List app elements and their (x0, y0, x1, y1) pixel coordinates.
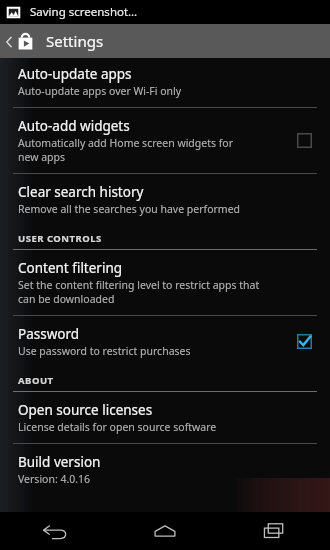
staticText: Saving screenshot… (30, 4, 138, 20)
button[interactable]: Build version (0, 444, 330, 495)
button[interactable]: Unchecked (293, 129, 316, 152)
staticText: Settings (46, 31, 104, 51)
staticText: Password (18, 325, 80, 343)
staticText: Auto-add widgets (18, 117, 130, 135)
staticText: Content filtering (18, 259, 123, 277)
staticText: Set the content filtering level to restr… (18, 278, 260, 306)
staticText: Use password to restrict purchases (18, 344, 191, 358)
button[interactable]: Auto-add widgets (0, 108, 330, 173)
button[interactable]: Content filtering (0, 250, 330, 315)
staticText: License details for open source software (18, 420, 217, 434)
button[interactable]: Recent apps (220, 512, 330, 550)
staticText: Automatically add Home screen widgets fo… (18, 136, 234, 164)
button[interactable]: Home (110, 512, 220, 550)
staticText: Open source licenses (18, 401, 153, 419)
button[interactable]: Auto-update apps (0, 58, 330, 107)
staticText: Auto-update apps (18, 65, 132, 83)
button[interactable]: Open source licenses (0, 392, 330, 443)
staticText: USER CONTROLS (18, 232, 102, 245)
staticText: Clear search history (18, 183, 144, 201)
staticText: Version: 4.0.16 (18, 472, 91, 486)
button[interactable]: Clear search history (0, 174, 330, 225)
staticText: Remove all the searches you have perform… (18, 202, 241, 216)
staticText: Auto-update apps over Wi-Fi only (18, 84, 182, 98)
button[interactable]: Checked (293, 330, 316, 353)
button[interactable]: Navigate up (0, 29, 37, 54)
staticText: ABOUT (18, 374, 54, 387)
button[interactable]: Back (0, 512, 110, 550)
button[interactable]: Password (0, 316, 330, 367)
staticText: Build version (18, 453, 101, 471)
